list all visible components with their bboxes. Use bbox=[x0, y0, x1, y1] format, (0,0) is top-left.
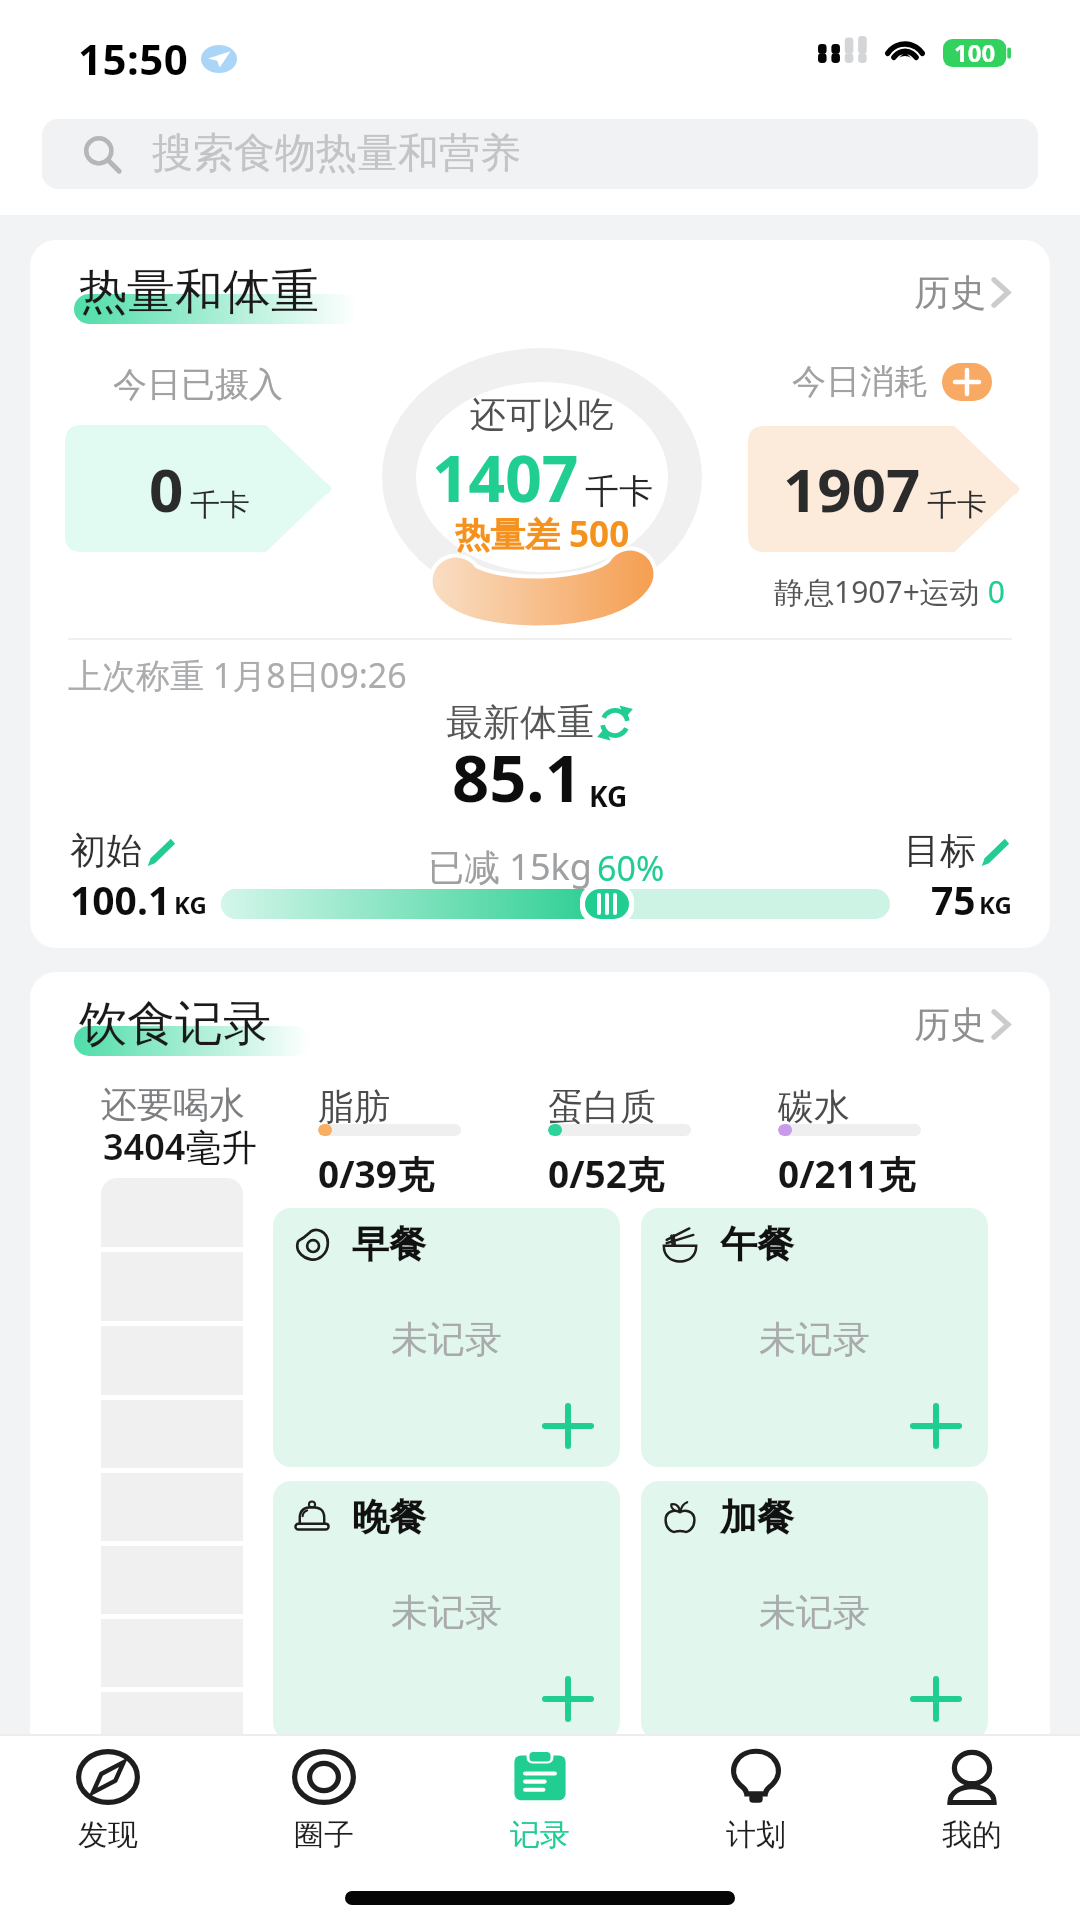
staticText: 上次称重 1月8日09:26 bbox=[68, 652, 407, 698]
button[interactable]: 添加早餐 bbox=[543, 1401, 593, 1451]
staticText: 85.1 bbox=[452, 733, 582, 822]
staticText: 搜索食物热量和营养 bbox=[152, 128, 521, 180]
staticText: 加餐 bbox=[720, 1494, 794, 1541]
staticText: KG bbox=[979, 888, 1012, 921]
staticText: 0 bbox=[149, 448, 184, 530]
staticText: 午餐 bbox=[720, 1221, 794, 1268]
staticText: 今日已摄入 bbox=[113, 363, 283, 406]
button[interactable]: 晚餐 bbox=[273, 1481, 620, 1740]
staticText: KG bbox=[589, 777, 628, 815]
staticText: 1407 bbox=[432, 434, 579, 521]
button[interactable]: 午餐 bbox=[641, 1208, 988, 1467]
staticText: 未记录 bbox=[391, 1316, 502, 1363]
button[interactable]: 历史 bbox=[890, 994, 1012, 1055]
button[interactable]: 添加今日消耗 bbox=[942, 363, 992, 401]
button[interactable]: 添加加餐 bbox=[911, 1674, 961, 1724]
staticText: 圈子 bbox=[294, 1816, 354, 1854]
staticText: 0/52克 bbox=[548, 1148, 664, 1199]
staticText: 历史 bbox=[914, 270, 986, 315]
staticText: 未记录 bbox=[391, 1589, 502, 1636]
staticText: 计划 bbox=[726, 1816, 786, 1854]
staticText: KG bbox=[174, 888, 207, 921]
staticText: 记录 bbox=[510, 1816, 570, 1854]
button[interactable]: 我的 bbox=[864, 1736, 1080, 1866]
staticText: 0 bbox=[980, 571, 1005, 612]
staticText: 静息1907+运动 bbox=[774, 571, 980, 612]
staticText: 已减 15kg bbox=[428, 842, 592, 891]
staticText: 未记录 bbox=[759, 1316, 870, 1363]
staticText: 我的 bbox=[942, 1816, 1002, 1854]
staticText: 历史 bbox=[914, 1002, 986, 1047]
staticText: 千卡 bbox=[927, 486, 987, 524]
button[interactable]: 添加晚餐 bbox=[543, 1674, 593, 1724]
button[interactable]: 体重进度 bbox=[585, 889, 629, 919]
staticText: 还要喝水 bbox=[101, 1082, 245, 1127]
staticText: 碳水 bbox=[778, 1084, 850, 1129]
button[interactable]: 记录 bbox=[432, 1736, 648, 1866]
staticText: 3404毫升 bbox=[103, 1122, 258, 1171]
button[interactable]: 圈子 bbox=[216, 1736, 432, 1866]
staticText: 初始 bbox=[70, 828, 142, 873]
staticText: 目标 bbox=[904, 828, 976, 873]
button[interactable]: 喝水记录 bbox=[101, 1178, 243, 1760]
button[interactable]: 早餐 bbox=[273, 1208, 620, 1467]
staticText: 100 bbox=[954, 36, 996, 69]
staticText: 千卡 bbox=[190, 486, 250, 524]
staticText: 发现 bbox=[78, 1816, 138, 1854]
staticText: 60% bbox=[597, 845, 665, 891]
button[interactable]: 添加午餐 bbox=[911, 1401, 961, 1451]
button[interactable]: 计划 bbox=[648, 1736, 864, 1866]
staticText: 千卡 bbox=[585, 470, 653, 513]
staticText: 还可以吃 bbox=[470, 392, 614, 437]
staticText: 0/211克 bbox=[778, 1148, 916, 1199]
staticText: 100.1 bbox=[70, 873, 171, 926]
button[interactable]: 历史 bbox=[890, 262, 1012, 323]
staticText: 15:50 bbox=[78, 30, 189, 87]
button[interactable]: 搜索食物热量和营养 bbox=[42, 119, 1038, 189]
staticText: 蛋白质 bbox=[548, 1084, 656, 1129]
staticText: 1907 bbox=[783, 448, 921, 530]
staticText: 晚餐 bbox=[352, 1494, 426, 1541]
staticText: 未记录 bbox=[759, 1589, 870, 1636]
button[interactable]: 发现 bbox=[0, 1736, 216, 1866]
staticText: 今日消耗 bbox=[792, 360, 928, 403]
staticText: 最新体重 bbox=[446, 699, 594, 746]
staticText: 75 bbox=[931, 873, 976, 926]
staticText: 饮食记录 bbox=[79, 994, 271, 1054]
staticText: 早餐 bbox=[352, 1221, 426, 1268]
staticText: 脂肪 bbox=[318, 1084, 390, 1129]
button[interactable]: 加餐 bbox=[641, 1481, 988, 1740]
staticText: 热量差 500 bbox=[455, 510, 630, 558]
staticText: 0/39克 bbox=[318, 1148, 434, 1199]
staticText: 热量和体重 bbox=[79, 262, 319, 322]
